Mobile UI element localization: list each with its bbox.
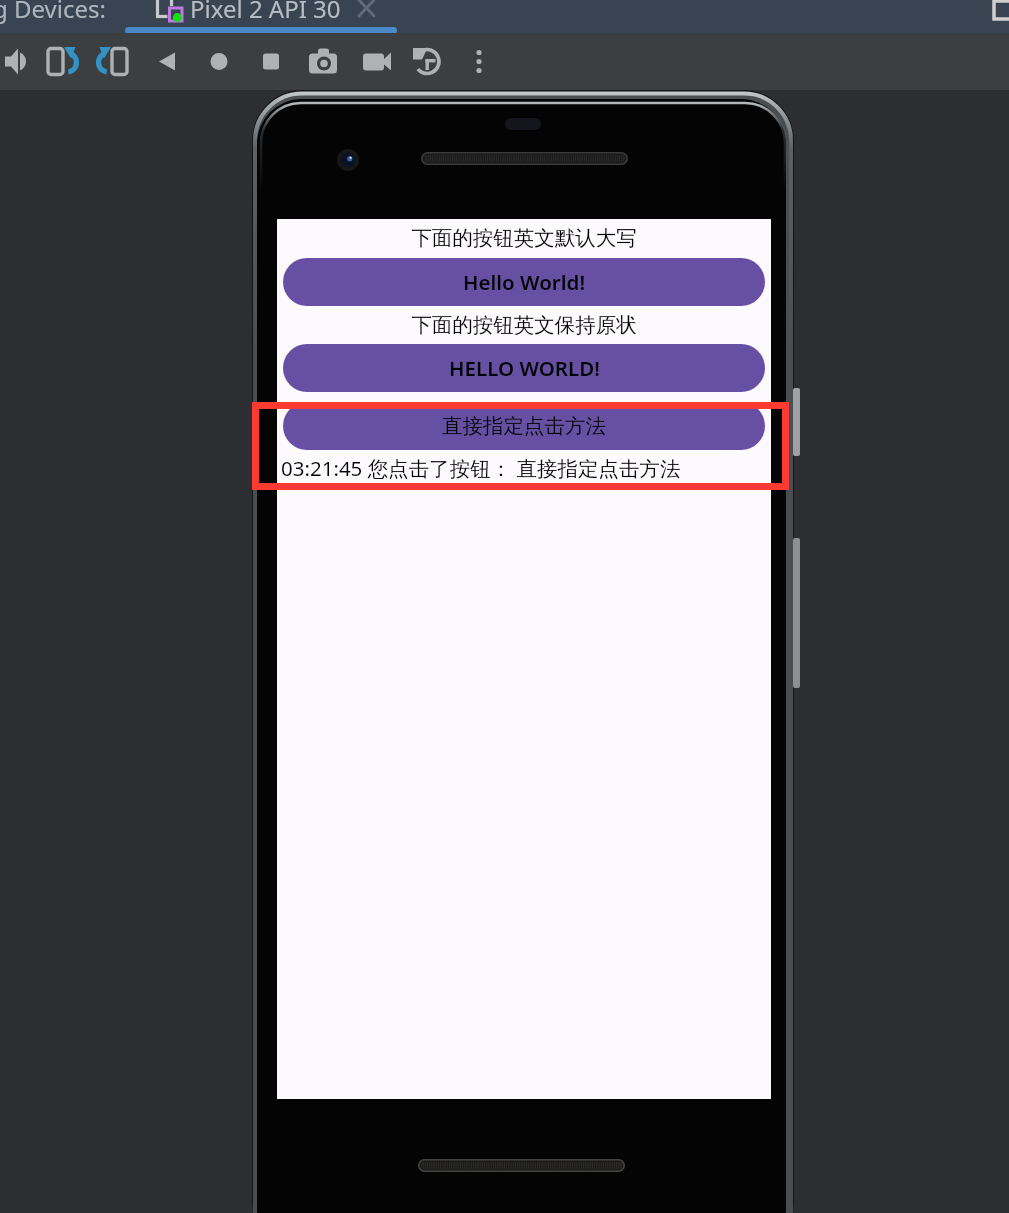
button[interactable]: HELLO WORLD! [283, 344, 765, 392]
button[interactable]: Close tab [357, 0, 376, 19]
button[interactable]: Rotate right [92, 33, 134, 90]
staticText: Pixel 2 API 30 [190, 0, 341, 25]
staticText: 03:21:45 您点击了按钮： 直接指定点击方法 [281, 454, 681, 482]
staticText: 下面的按钮英文保持原状 [277, 312, 771, 338]
button[interactable]: Home [198, 33, 240, 90]
staticText: Hello World! [463, 268, 586, 296]
staticText: 直接指定点击方法 [442, 413, 606, 439]
button[interactable]: Rotate left [41, 33, 83, 90]
button[interactable]: Overview [250, 33, 292, 90]
button[interactable]: Hello World! [283, 258, 765, 306]
button[interactable]: Reset [406, 33, 448, 90]
staticText: g Devices: [0, 0, 106, 25]
button[interactable]: More [458, 33, 500, 90]
button[interactable]: Screenshot [302, 33, 344, 90]
staticText: 下面的按钮英文默认大写 [277, 225, 771, 251]
button[interactable]: 直接指定点击方法 [283, 402, 765, 450]
other: Window [994, 0, 1009, 20]
button[interactable]: Record screen [356, 33, 398, 90]
staticText: HELLO WORLD! [449, 354, 600, 382]
button[interactable]: Back [146, 33, 188, 90]
button[interactable]: Volume [0, 33, 36, 90]
